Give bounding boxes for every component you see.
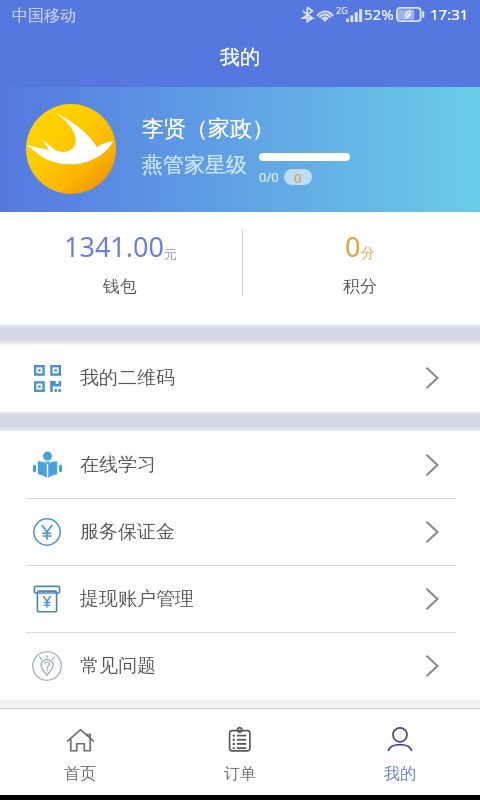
staticText: 1341.00 bbox=[64, 228, 164, 265]
staticText: 服务保证金 bbox=[80, 520, 175, 544]
staticText: 0 bbox=[294, 169, 302, 185]
staticText: 订单 bbox=[224, 764, 256, 784]
staticText: 燕管家星级 bbox=[142, 152, 247, 178]
staticText: 0/0 bbox=[259, 168, 279, 186]
staticText: 钱包 bbox=[103, 276, 137, 297]
staticText: 2G bbox=[336, 4, 348, 16]
staticText: 0 bbox=[345, 228, 361, 265]
button[interactable]: 我的 bbox=[320, 709, 480, 795]
button[interactable]: 在线学习 bbox=[0, 432, 480, 498]
staticText: 提现账户管理 bbox=[80, 587, 194, 611]
staticText: 首页 bbox=[64, 764, 96, 784]
staticText: 分 bbox=[361, 245, 375, 263]
staticText: 常见问题 bbox=[80, 654, 156, 678]
staticText: 我的 bbox=[220, 45, 260, 70]
staticText: 52% bbox=[364, 4, 394, 24]
button[interactable]: 首页 bbox=[0, 709, 160, 795]
button[interactable]: 服务保证金 bbox=[0, 499, 480, 565]
button[interactable]: 常见问题 bbox=[0, 633, 480, 699]
staticText: 元 bbox=[164, 246, 177, 262]
staticText: 李贤（家政） bbox=[142, 115, 274, 143]
button[interactable]: 我的二维码 bbox=[0, 345, 480, 411]
staticText: 我的 bbox=[384, 764, 416, 784]
staticText: 17:31 bbox=[430, 4, 469, 24]
staticText: 在线学习 bbox=[80, 453, 156, 477]
button[interactable]: 订单 bbox=[160, 709, 320, 795]
staticText: 我的二维码 bbox=[80, 366, 175, 390]
button[interactable]: 提现账户管理 bbox=[0, 566, 480, 632]
staticText: 中国移动 bbox=[12, 6, 76, 26]
staticText: 积分 bbox=[343, 276, 377, 297]
